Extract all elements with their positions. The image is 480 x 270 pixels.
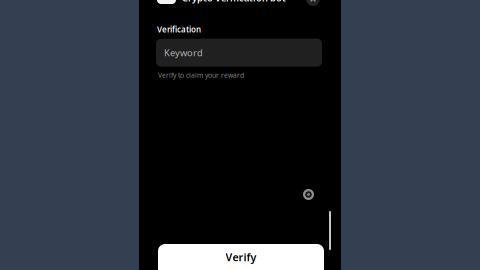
staticText: Verify [225,250,256,264]
staticText: Keyword [164,46,203,59]
staticText: Verify to claim your reward [158,71,244,79]
button[interactable]: Verify [158,244,324,270]
staticText: Crypto Verification bot [182,0,286,4]
staticText: Verification [157,24,201,35]
button[interactable]: Close [306,0,320,4]
